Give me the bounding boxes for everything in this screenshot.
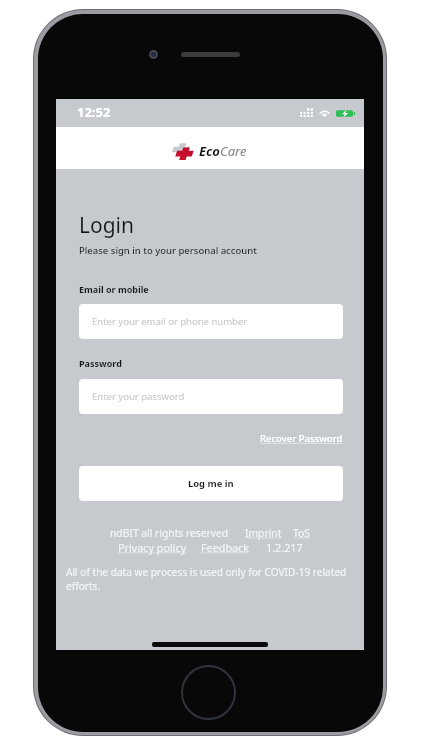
button[interactable]: Imprint [245, 526, 282, 540]
button[interactable]: Log me in [79, 466, 343, 501]
staticText: Care [220, 142, 247, 160]
staticText: Eco [199, 142, 220, 160]
staticText: Please sign in to your personal account [79, 244, 257, 257]
button[interactable]: ToS [293, 526, 310, 540]
staticText: 1.2.217 [266, 540, 303, 555]
staticText: Email or mobile [79, 283, 149, 295]
staticText: Enter your email or phone number [92, 315, 248, 328]
button[interactable]: Privacy policy [118, 540, 187, 555]
button[interactable]: Enter your password [79, 379, 343, 414]
button[interactable]: Enter your email or phone number [79, 304, 343, 339]
staticText: ndBIT all rights reserved [110, 526, 229, 540]
button[interactable]: Feedback [201, 540, 250, 555]
button[interactable]: Recover Password [260, 432, 343, 445]
staticText: Log me in [188, 477, 234, 490]
staticText: All of the data we process is used only … [66, 565, 353, 593]
staticText: Password [79, 357, 122, 369]
staticText: 12:52 [77, 103, 111, 121]
staticText: Enter your password [92, 390, 185, 403]
staticText: Login [79, 211, 135, 240]
